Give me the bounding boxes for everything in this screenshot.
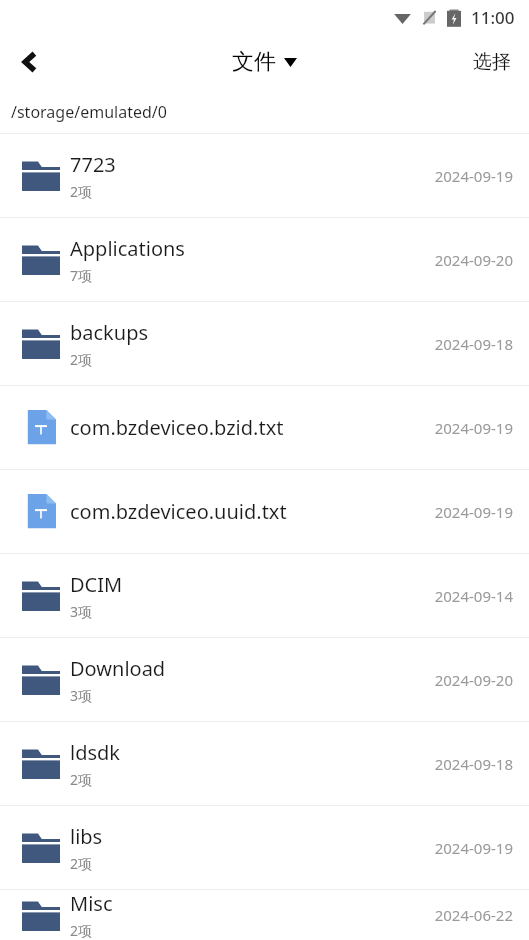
button[interactable]: com.bzdeviceo.uuid.txt xyxy=(0,470,529,553)
staticText: Misc xyxy=(70,890,113,917)
staticText: Download xyxy=(70,655,166,682)
button[interactable]: backups xyxy=(0,302,529,385)
staticText: 7项 xyxy=(70,266,93,285)
staticText: 2024-09-19 xyxy=(434,838,513,858)
staticText: 2024-06-22 xyxy=(434,905,513,925)
staticText: backups xyxy=(70,319,149,346)
button[interactable]: Applications xyxy=(0,218,529,301)
staticText: 2项 xyxy=(70,770,93,789)
button[interactable]: libs xyxy=(0,806,529,889)
staticText: com.bzdeviceo.uuid.txt xyxy=(70,498,287,525)
button[interactable]: DCIM xyxy=(0,554,529,637)
staticText: 2024-09-14 xyxy=(434,586,513,606)
staticText: 2项 xyxy=(70,921,93,940)
staticText: Applications xyxy=(70,235,185,262)
staticText: 2024-09-20 xyxy=(434,250,513,270)
staticText: /storage/emulated/0 xyxy=(11,101,167,123)
staticText: 2项 xyxy=(70,182,93,201)
staticText: 2024-09-18 xyxy=(434,334,513,354)
staticText: 2024-09-18 xyxy=(434,754,513,774)
button[interactable]: com.bzdeviceo.bzid.txt xyxy=(0,386,529,469)
staticText: 3项 xyxy=(70,686,93,705)
staticText: 2项 xyxy=(70,854,93,873)
button[interactable]: ldsdk xyxy=(0,722,529,805)
button[interactable]: 7723 xyxy=(0,134,529,217)
staticText: ldsdk xyxy=(70,739,121,766)
staticText: 2024-09-19 xyxy=(434,418,513,438)
staticText: 2024-09-19 xyxy=(434,166,513,186)
button[interactable]: Misc xyxy=(0,890,529,940)
staticText: 2项 xyxy=(70,350,93,369)
staticText: 3项 xyxy=(70,602,93,621)
staticText: DCIM xyxy=(70,571,123,598)
button[interactable]: Back xyxy=(4,36,56,88)
staticText: 2024-09-20 xyxy=(434,670,513,690)
staticText: 7723 xyxy=(70,151,116,178)
button[interactable]: 选择 xyxy=(455,40,529,84)
staticText: 2024-09-19 xyxy=(434,502,513,522)
staticText: com.bzdeviceo.bzid.txt xyxy=(70,414,284,441)
button[interactable]: Download xyxy=(0,638,529,721)
staticText: libs xyxy=(70,823,103,850)
button[interactable]: 文件 xyxy=(232,48,297,76)
staticText: 选择 xyxy=(473,50,511,74)
staticText: 11:00 xyxy=(471,6,515,29)
staticText: 文件 xyxy=(232,48,276,76)
